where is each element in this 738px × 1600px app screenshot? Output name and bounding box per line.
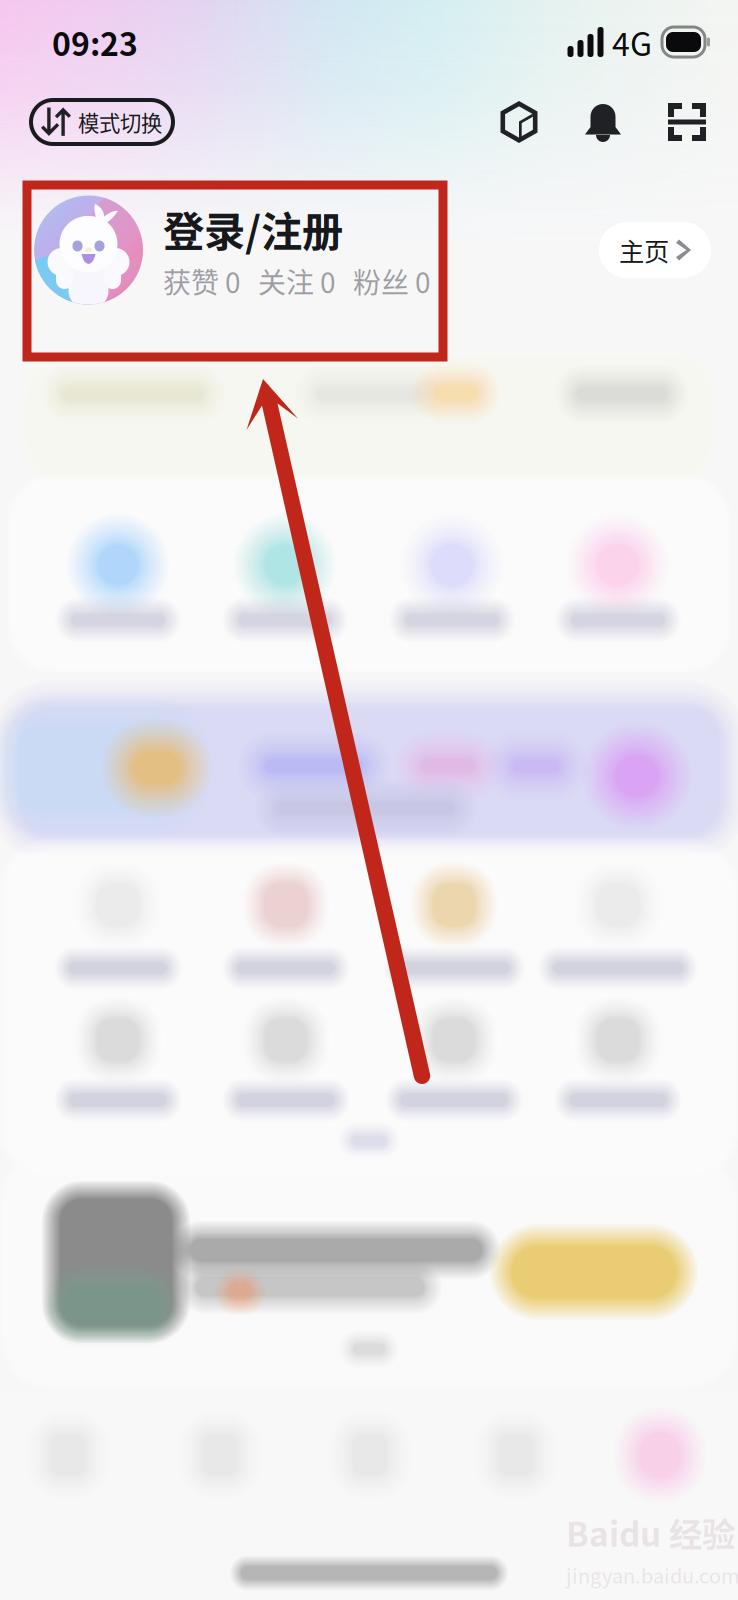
button[interactable]: 模式切换 (31, 100, 173, 144)
button[interactable]: 主页 (599, 222, 711, 278)
staticText: jingyan.baidu.com (566, 1560, 738, 1589)
button[interactable]: AR cube (491, 94, 547, 150)
staticText: 模式切换 (78, 107, 162, 137)
staticText: 登录/注册 (163, 199, 343, 259)
staticText: 4G (612, 19, 652, 65)
staticText: 获赞 0 (163, 261, 241, 301)
staticText: 关注 0 (258, 261, 336, 301)
staticText: 粉丝 0 (353, 261, 431, 301)
button[interactable]: 登录/注册 (0, 164, 443, 336)
staticText: 09:23 (52, 19, 138, 65)
button[interactable]: Notifications (575, 94, 631, 150)
staticText: Baidu 经验 (566, 1508, 735, 1556)
button[interactable]: Scan (659, 94, 715, 150)
staticText: 主页 (619, 232, 669, 268)
